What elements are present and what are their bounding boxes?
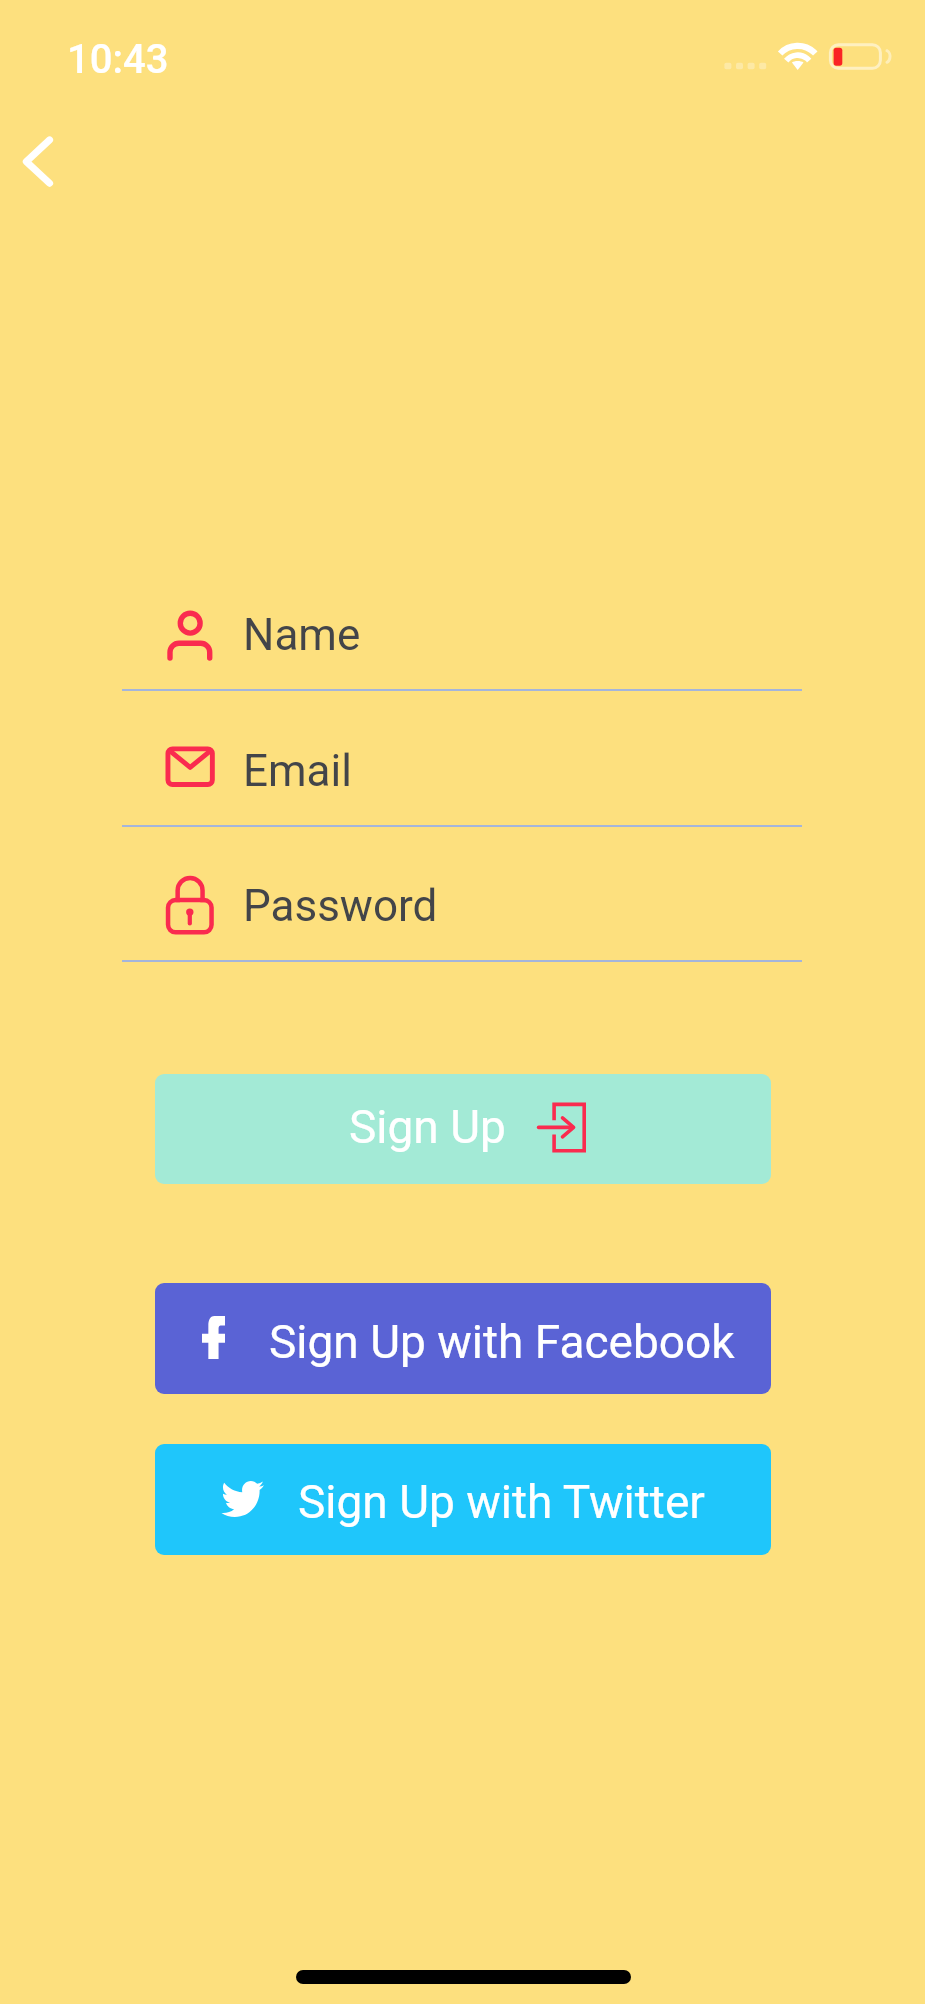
- button[interactable]: Sign Up with Twitter: [155, 1444, 771, 1555]
- button[interactable]: Email: [122, 703, 802, 827]
- button[interactable]: Name: [122, 567, 802, 691]
- staticText: Sign Up with Twitter: [298, 1475, 705, 1529]
- button[interactable]: Back: [1, 114, 97, 210]
- staticText: Sign Up with Facebook: [269, 1315, 735, 1369]
- button[interactable]: Sign Up with Facebook: [155, 1283, 771, 1394]
- staticText: Password: [243, 880, 438, 932]
- button[interactable]: Sign Up: [155, 1074, 771, 1184]
- staticText: Name: [243, 609, 361, 661]
- staticText: Sign Up: [349, 1100, 506, 1154]
- button[interactable]: Password: [122, 838, 802, 962]
- staticText: Email: [243, 745, 352, 797]
- staticText: 10:43: [67, 36, 169, 83]
